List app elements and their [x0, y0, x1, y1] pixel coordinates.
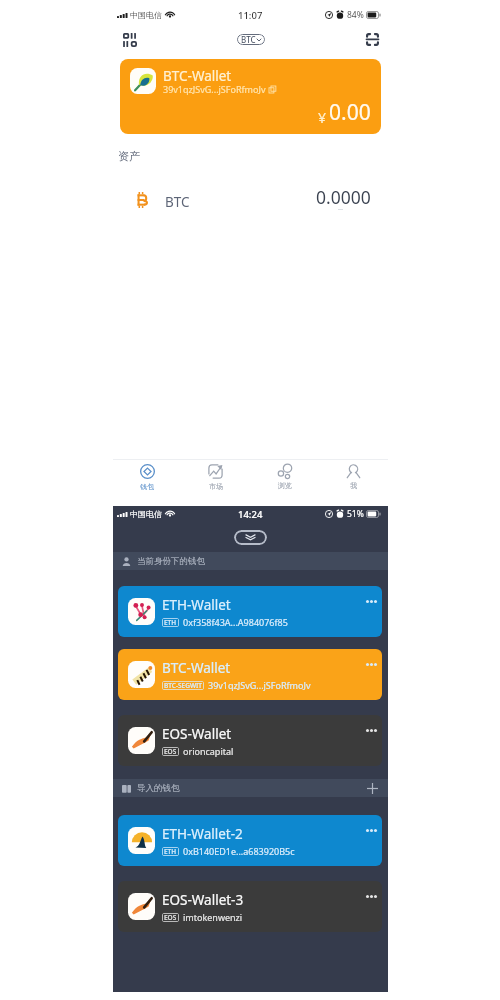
staticText: EOS-Wallet-3	[162, 891, 244, 909]
staticText: 0.0000	[316, 185, 371, 209]
button[interactable]: ETH-Wallet-2	[118, 815, 382, 866]
button[interactable]: Collapse	[234, 530, 267, 545]
button[interactable]: 市场	[181, 460, 250, 494]
button[interactable]: More options	[363, 593, 379, 609]
staticText: ETH-Wallet	[162, 596, 231, 614]
button[interactable]: BTC	[237, 34, 265, 45]
staticText: 39v1qzJSvG...jSFoRfmoJv	[208, 679, 311, 691]
staticText: 84%	[347, 9, 364, 21]
staticText: 39v1qzJSvG...jSFoRfmoJv	[163, 83, 266, 95]
staticText: ETH	[164, 847, 177, 856]
staticText: 当前身份下的钱包	[137, 556, 205, 567]
button[interactable]: EOS-Wallet-3	[118, 881, 382, 932]
staticText: BTC-SEGWIT	[164, 681, 202, 690]
button[interactable]: Add wallet	[365, 781, 379, 795]
staticText: 0.00	[329, 98, 371, 127]
button[interactable]: More options	[363, 822, 379, 838]
staticText: ETH-Wallet-2	[162, 825, 243, 843]
staticText: EOS-Wallet	[162, 725, 232, 743]
staticText: EOS	[164, 747, 177, 756]
button[interactable]: 我	[319, 460, 388, 494]
button[interactable]: Scan	[361, 28, 383, 50]
staticText: 14:24	[238, 508, 263, 521]
button[interactable]: EOS-Wallet	[118, 715, 382, 766]
staticText: EOS	[164, 913, 177, 922]
button[interactable]: BTC-Wallet	[120, 59, 381, 134]
button[interactable]: 钱包	[113, 460, 181, 494]
staticText: imtokenwenzi	[183, 911, 243, 923]
button[interactable]: More options	[363, 722, 379, 738]
staticText: BTC-Wallet	[162, 659, 231, 677]
staticText: ETH	[164, 618, 177, 627]
staticText: orioncapital	[183, 745, 234, 757]
staticText: ¥	[318, 108, 327, 127]
button[interactable]: BTC-Wallet	[118, 649, 382, 700]
staticText: 0xf358f43A...A984076f85	[183, 616, 288, 628]
button[interactable]: More options	[363, 656, 379, 672]
button[interactable]: More options	[363, 888, 379, 904]
staticText: 钱包	[140, 482, 154, 491]
staticText: 11:07	[238, 9, 263, 22]
staticText: BTC-Wallet	[163, 67, 232, 85]
staticText: 51%	[347, 508, 364, 520]
staticText: 我	[350, 481, 357, 490]
staticText: 导入的钱包	[137, 783, 180, 794]
staticText: BTC	[241, 34, 256, 45]
staticText: 中国电信	[130, 509, 162, 519]
button[interactable]: ETH-Wallet	[118, 586, 382, 637]
staticText: 浏览	[278, 481, 292, 490]
staticText: 中国电信	[130, 10, 162, 20]
staticText: 市场	[209, 482, 223, 491]
staticText: 资产	[118, 149, 140, 163]
button[interactable]: BTC	[118, 183, 371, 216]
button[interactable]: 浏览	[250, 460, 319, 494]
staticText: 0xB140ED1e...a683920B5c	[183, 845, 295, 857]
staticText: BTC	[165, 193, 190, 211]
button[interactable]: Wallet list	[119, 29, 141, 51]
